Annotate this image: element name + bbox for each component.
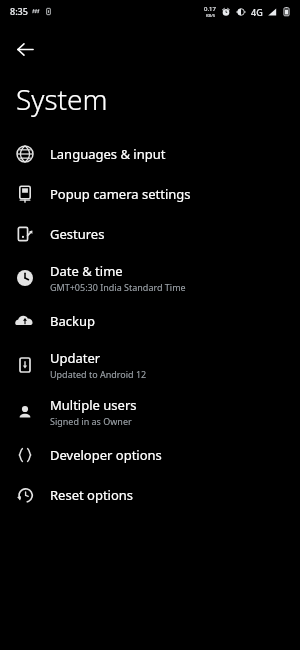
staticText: Reset options xyxy=(50,486,134,504)
staticText: Updater xyxy=(50,349,101,367)
staticText: Multiple users xyxy=(50,396,137,414)
staticText: 8:35 xyxy=(10,5,28,17)
staticText: System xyxy=(16,80,108,118)
button[interactable]: Backup xyxy=(0,301,300,341)
button[interactable]: Popup camera settings xyxy=(0,174,300,214)
button[interactable]: Gestures xyxy=(0,214,300,254)
staticText: Signed in as Owner xyxy=(50,415,132,427)
staticText: Backup xyxy=(50,312,95,330)
button[interactable]: Multiple users xyxy=(0,388,300,435)
button[interactable]: Date & time xyxy=(0,254,300,301)
staticText: Languages & input xyxy=(50,145,166,163)
staticText: 0.17 xyxy=(204,5,216,13)
staticText: 4G xyxy=(251,6,263,18)
button[interactable]: Languages & input xyxy=(0,134,300,174)
staticText: Gestures xyxy=(50,225,105,243)
button[interactable]: Reset options xyxy=(0,475,300,515)
button[interactable]: Updater xyxy=(0,341,300,388)
staticText: Date & time xyxy=(50,262,123,280)
button[interactable]: Developer options xyxy=(0,435,300,475)
staticText: Developer options xyxy=(50,446,162,464)
staticText: Updated to Android 12 xyxy=(50,368,147,380)
staticText: GMT+05:30 India Standard Time xyxy=(50,281,186,293)
staticText: Popup camera settings xyxy=(50,185,191,203)
staticText: KB/S xyxy=(206,13,215,18)
button[interactable]: Back xyxy=(6,30,44,68)
